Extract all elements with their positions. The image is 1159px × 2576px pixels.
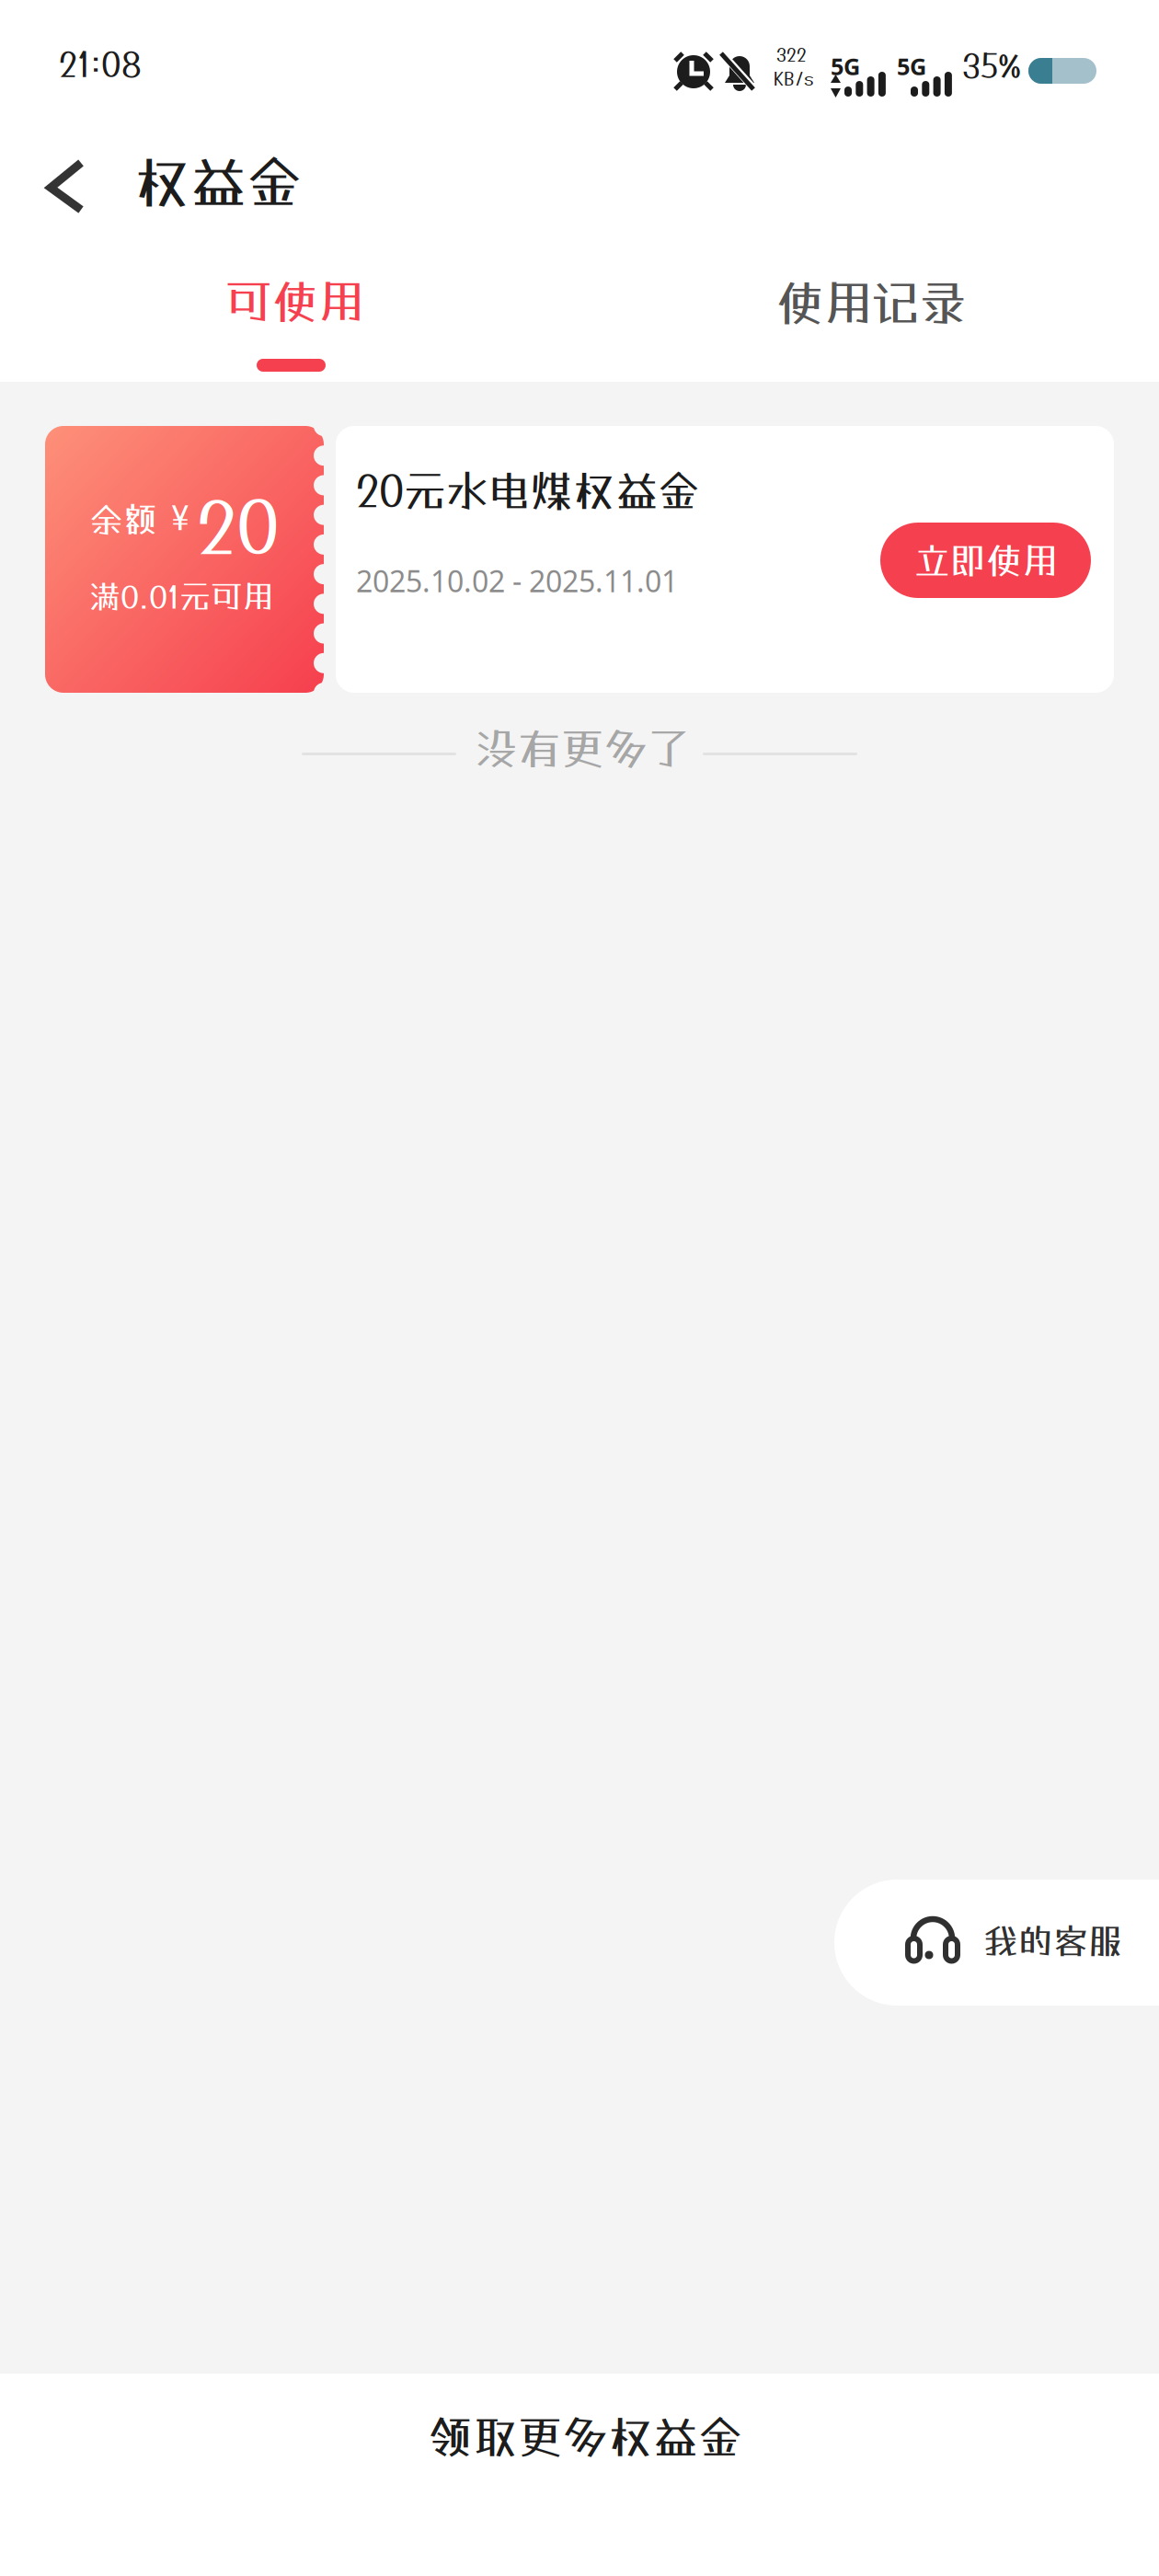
staticText: 没有更多了 — [475, 723, 691, 774]
staticText: 使用记录 — [775, 274, 967, 331]
button[interactable]: 我的客服 — [834, 1880, 1159, 2006]
staticText: 5G — [831, 51, 860, 82]
staticText: 领取更多权益金 — [428, 2410, 743, 2463]
staticText: 可使用 — [225, 274, 363, 328]
staticText: 立即使用 — [914, 539, 1057, 582]
staticText: 权益金 — [134, 149, 303, 215]
button[interactable]: 可使用 — [159, 263, 435, 378]
staticText: 322 — [776, 44, 807, 65]
staticText: ¥ — [170, 498, 190, 537]
staticText: 20元水电煤权益金 — [356, 466, 700, 515]
staticText: 余额 — [89, 499, 157, 539]
staticText: KB/s — [774, 68, 814, 89]
button[interactable]: Back — [18, 138, 127, 248]
staticText: 满0.01元可用 — [89, 578, 273, 615]
button[interactable]: 领取更多权益金 — [0, 2374, 1159, 2576]
staticText: 21:08 — [59, 44, 142, 84]
staticText: 5G — [897, 51, 926, 82]
button[interactable]: 使用记录 — [729, 263, 1005, 378]
staticText: 35% — [962, 46, 1021, 84]
staticText: 2025.10.02 - 2025.11.01 — [356, 561, 678, 600]
staticText: 20 — [197, 483, 280, 568]
button[interactable]: 立即使用 — [880, 523, 1091, 598]
staticText: 我的客服 — [983, 1920, 1123, 1961]
